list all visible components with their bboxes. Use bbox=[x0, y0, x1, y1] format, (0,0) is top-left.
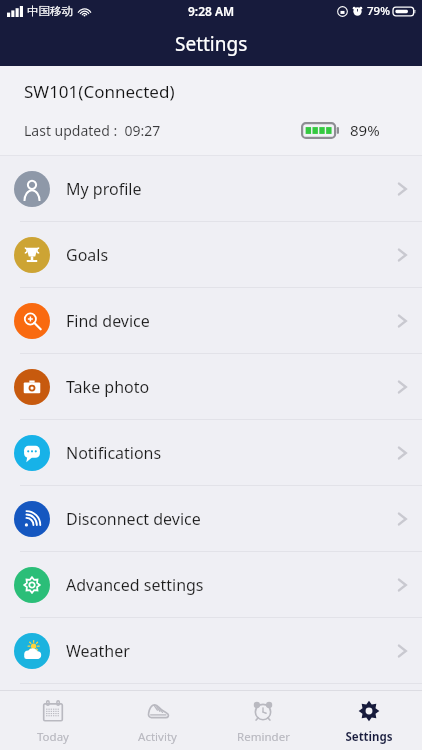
staticText: Advanced settings bbox=[66, 574, 204, 596]
button[interactable]: Goals bbox=[0, 222, 422, 287]
staticText: 89% bbox=[350, 120, 380, 140]
button[interactable]: Reminder bbox=[210, 691, 316, 750]
staticText: Find device bbox=[66, 310, 150, 332]
button[interactable]: Advanced settings bbox=[0, 552, 422, 617]
staticText: Settings bbox=[175, 31, 248, 57]
staticText: Take photo bbox=[66, 376, 150, 398]
button[interactable]: Weather bbox=[0, 618, 422, 683]
button[interactable]: Disconnect device bbox=[0, 486, 422, 551]
staticText: Settings bbox=[345, 729, 393, 745]
button[interactable]: My profile bbox=[0, 156, 422, 221]
staticText: 9:28 AM bbox=[188, 3, 235, 19]
staticText: 79% bbox=[367, 3, 390, 19]
staticText: My profile bbox=[66, 178, 142, 200]
button[interactable]: Notifications bbox=[0, 420, 422, 485]
button[interactable]: Take photo bbox=[0, 354, 422, 419]
staticText: Notifications bbox=[66, 442, 162, 464]
staticText: SW101(Connected) bbox=[24, 80, 175, 103]
staticText: Today bbox=[37, 729, 69, 745]
button[interactable]: Activity bbox=[105, 691, 210, 750]
staticText: Disconnect device bbox=[66, 508, 201, 530]
staticText: Activity bbox=[138, 729, 177, 745]
staticText: Last updated : 09:27 bbox=[24, 121, 161, 140]
staticText: 中国移动 bbox=[27, 4, 73, 18]
staticText: Reminder bbox=[237, 729, 290, 745]
button[interactable]: Settings bbox=[316, 691, 422, 750]
staticText: Goals bbox=[66, 244, 109, 266]
button[interactable]: Find device bbox=[0, 288, 422, 353]
staticText: Weather bbox=[66, 640, 130, 662]
button[interactable]: Today bbox=[0, 691, 105, 750]
